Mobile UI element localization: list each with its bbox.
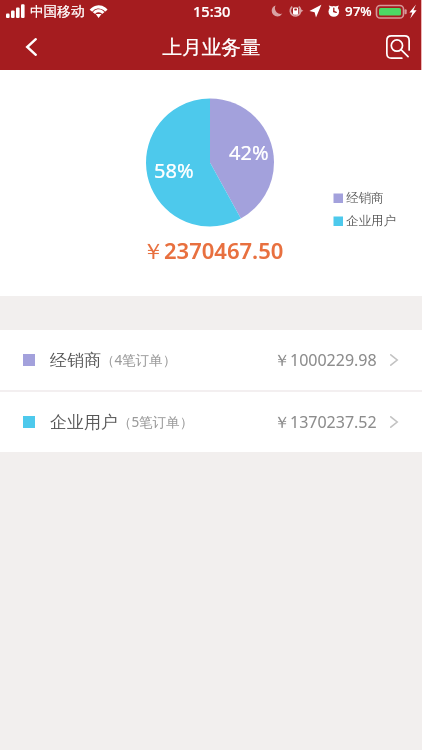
staticText: 企业用户	[346, 213, 396, 229]
staticText: 58%	[154, 157, 194, 184]
staticText: （4笔订单）	[101, 351, 177, 369]
staticText: 97%	[345, 2, 372, 20]
staticText: 上月业务量	[162, 35, 261, 60]
staticText: 经销商	[346, 190, 384, 206]
staticText: 15:30	[193, 1, 231, 21]
button[interactable]: 经销商	[0, 330, 422, 390]
button[interactable]: 企业用户	[0, 392, 422, 452]
staticText: ￥1000229.98	[274, 349, 377, 371]
staticText: 中国移动	[30, 3, 85, 20]
staticText: ￥1370237.52	[274, 411, 377, 433]
staticText: （5笔订单）	[118, 413, 194, 431]
staticText: 42%	[229, 139, 269, 166]
staticText: 经销商	[50, 350, 101, 371]
staticText: 企业用户	[50, 412, 118, 433]
button[interactable]: Search	[377, 26, 419, 68]
staticText: ￥2370467.50	[142, 235, 284, 265]
button[interactable]: Back	[10, 26, 52, 68]
